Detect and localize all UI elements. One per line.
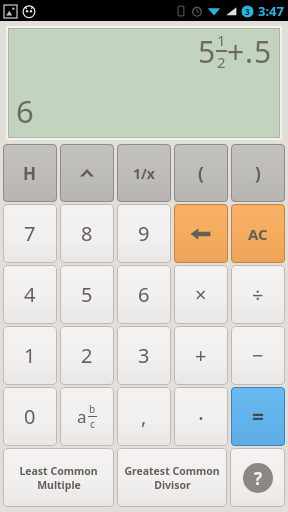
button[interactable]: ) bbox=[231, 144, 285, 202]
staticText: − bbox=[252, 342, 264, 369]
button[interactable]: + bbox=[174, 326, 228, 385]
button[interactable]: Backspace bbox=[174, 204, 228, 263]
staticText: H bbox=[23, 162, 37, 185]
staticText: + bbox=[195, 342, 207, 369]
staticText: 9 bbox=[138, 220, 150, 247]
staticText: = bbox=[252, 402, 265, 431]
staticText: · bbox=[198, 402, 204, 432]
button[interactable]: 3 bbox=[117, 326, 171, 385]
button[interactable]: ( bbox=[174, 144, 228, 202]
staticText: 4 bbox=[24, 281, 36, 308]
button[interactable]: × bbox=[174, 265, 228, 324]
staticText: 1/x bbox=[133, 164, 155, 183]
staticText: 1 bbox=[217, 30, 226, 50]
staticText: 3:47 bbox=[258, 2, 284, 20]
button[interactable]: Help bbox=[230, 448, 285, 507]
button[interactable]: − bbox=[231, 326, 285, 385]
staticText: 1 bbox=[24, 342, 36, 369]
button[interactable]: 2 bbox=[60, 326, 114, 385]
staticText: + bbox=[227, 31, 245, 72]
staticText: 5 bbox=[198, 31, 216, 72]
button[interactable]: 5 bbox=[60, 265, 114, 324]
button[interactable]: · bbox=[174, 387, 228, 446]
button[interactable]: Greatest Common bbox=[117, 448, 227, 507]
staticText: c bbox=[90, 417, 95, 431]
staticText: a bbox=[77, 405, 87, 428]
button[interactable]: , bbox=[117, 387, 171, 446]
staticText: AC bbox=[248, 224, 268, 244]
staticText: , bbox=[141, 403, 147, 430]
staticText: 3 bbox=[245, 6, 250, 17]
button[interactable]: H bbox=[3, 144, 57, 202]
staticText: Multiple bbox=[37, 478, 81, 492]
staticText: ? bbox=[254, 467, 263, 490]
button[interactable]: 7 bbox=[3, 204, 57, 263]
button[interactable]: 1/x bbox=[117, 144, 171, 202]
staticText: 7 bbox=[24, 220, 36, 247]
staticText: 6 bbox=[16, 90, 34, 132]
staticText: Greatest Common bbox=[124, 464, 220, 478]
staticText: ( bbox=[198, 162, 204, 185]
staticText: . bbox=[245, 31, 254, 72]
staticText: Divisor bbox=[154, 478, 191, 492]
staticText: 5 bbox=[254, 31, 272, 72]
button[interactable]: 0 bbox=[3, 387, 57, 446]
staticText: ) bbox=[255, 162, 261, 185]
staticText: 6 bbox=[138, 281, 150, 308]
button[interactable]: 6 bbox=[117, 265, 171, 324]
button[interactable]: 4 bbox=[3, 265, 57, 324]
staticText: ÷ bbox=[252, 281, 264, 308]
button[interactable]: 9 bbox=[117, 204, 171, 263]
button[interactable]: Power bbox=[60, 144, 114, 202]
staticText: 8 bbox=[81, 220, 93, 247]
button[interactable]: 1 bbox=[3, 326, 57, 385]
button[interactable]: = bbox=[231, 387, 285, 446]
staticText: b bbox=[89, 402, 96, 416]
button[interactable]: AC bbox=[231, 204, 285, 263]
staticText: 2 bbox=[217, 52, 226, 72]
button[interactable]: Least Common bbox=[3, 448, 114, 507]
button[interactable]: ÷ bbox=[231, 265, 285, 324]
staticText: 0 bbox=[24, 403, 36, 430]
staticText: 3 bbox=[138, 342, 150, 369]
staticText: × bbox=[195, 281, 207, 308]
staticText: 5 bbox=[81, 281, 93, 308]
staticText: 2 bbox=[81, 342, 93, 369]
staticText: Least Common bbox=[19, 464, 98, 478]
button[interactable]: a b over c bbox=[60, 387, 114, 446]
button[interactable]: 8 bbox=[60, 204, 114, 263]
